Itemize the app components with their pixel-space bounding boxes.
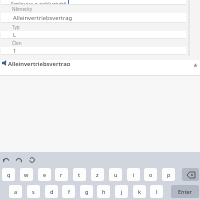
staticText: i: [133, 171, 135, 178]
button[interactable]: Play pronunciation: [2, 60, 7, 66]
staticText: k: [138, 188, 142, 195]
staticText: f: [68, 188, 70, 195]
button[interactable]: Redo: [14, 155, 23, 164]
staticText: r: [60, 171, 63, 178]
button[interactable]: s: [27, 185, 40, 198]
button[interactable]: k: [133, 185, 146, 198]
button[interactable]: Favourite: [193, 63, 198, 68]
button[interactable]: a: [9, 185, 22, 198]
button[interactable]: e: [38, 168, 51, 181]
button[interactable]: Alleinvertriebsvertrag: [1, 13, 186, 23]
button[interactable]: u: [109, 168, 122, 181]
button[interactable]: q: [2, 168, 15, 181]
staticText: l: [156, 188, 158, 195]
button[interactable]: z: [91, 168, 104, 181]
staticText: 1: [13, 47, 17, 55]
staticText: j: [121, 188, 123, 195]
button[interactable]: Smlouva o exkluzivitě: [1, 0, 186, 5]
button[interactable]: g: [80, 185, 93, 198]
button[interactable]: w: [20, 168, 33, 181]
button[interactable]: r: [55, 168, 68, 181]
button[interactable]: h: [97, 185, 110, 198]
button[interactable]: d: [45, 185, 58, 198]
button[interactable]: 1: [1, 47, 186, 55]
staticText: Alleinvertriebsvertrag: [13, 14, 73, 22]
button[interactable]: Undo: [1, 155, 10, 164]
staticText: Člen: [12, 40, 22, 46]
button[interactable]: l: [150, 185, 163, 198]
button[interactable]: Enter: [171, 185, 199, 198]
staticText: g: [85, 188, 89, 195]
button[interactable]: L: [1, 31, 186, 39]
staticText: Alleinvertriebsvertrag: [8, 60, 71, 66]
staticText: h: [102, 188, 106, 195]
button[interactable]: f: [62, 185, 75, 198]
staticText: q: [7, 171, 11, 178]
button[interactable]: j: [115, 185, 128, 198]
staticText: a: [14, 188, 18, 195]
staticText: Typ: [12, 24, 20, 30]
button[interactable]: Backspace: [182, 168, 199, 181]
button[interactable]: Clipboard: [27, 155, 36, 164]
staticText: t: [78, 171, 81, 178]
button[interactable]: Play pronunciation: [0, 60, 200, 75]
staticText: Smlouva o exkluzivitě: [11, 0, 67, 5]
staticText: d: [50, 188, 54, 195]
button[interactable]: t: [73, 168, 86, 181]
staticText: e: [43, 171, 47, 178]
staticText: Enter: [178, 188, 192, 195]
staticText: w: [24, 171, 29, 178]
button[interactable]: i: [127, 168, 140, 181]
staticText: p: [167, 171, 171, 178]
staticText: z: [96, 171, 99, 178]
staticText: Německy: [12, 6, 32, 12]
staticText: s: [32, 188, 35, 195]
button[interactable]: p: [162, 168, 175, 181]
staticText: L: [13, 31, 17, 39]
button[interactable]: o: [144, 168, 157, 181]
staticText: u: [114, 171, 118, 178]
staticText: o: [149, 171, 153, 178]
